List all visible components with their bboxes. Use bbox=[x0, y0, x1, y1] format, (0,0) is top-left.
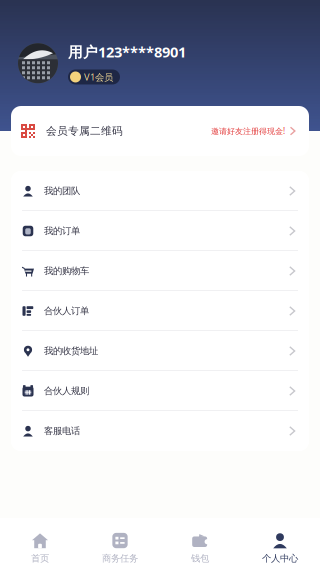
staticText: 我的团队 bbox=[44, 185, 80, 197]
staticText: 邀请好友注册得现金! bbox=[211, 126, 285, 136]
staticText: 用户123****8901 bbox=[68, 42, 186, 61]
staticText: 首页 bbox=[31, 552, 49, 564]
button[interactable]: 客服电话 bbox=[11, 411, 309, 451]
button[interactable]: 我的团队 bbox=[11, 171, 309, 211]
staticText: 客服电话 bbox=[44, 425, 80, 437]
button[interactable]: 我的收货地址 bbox=[11, 331, 309, 371]
button[interactable]: 商务任务 bbox=[80, 518, 160, 570]
staticText: 我的订单 bbox=[44, 225, 80, 237]
staticText: V1会员 bbox=[84, 71, 113, 83]
button[interactable]: 合伙人规则 bbox=[11, 371, 309, 411]
staticText: 我的购物车 bbox=[44, 265, 89, 277]
button[interactable]: 我的订单 bbox=[11, 211, 309, 251]
button[interactable]: 我的购物车 bbox=[11, 251, 309, 291]
staticText: 商务任务 bbox=[102, 552, 138, 564]
staticText: 钱包 bbox=[191, 552, 209, 564]
button[interactable]: 首页 bbox=[0, 518, 80, 570]
staticText: 个人中心 bbox=[262, 552, 298, 564]
button[interactable]: 钱包 bbox=[160, 518, 240, 570]
button[interactable]: 会员专属二维码 bbox=[11, 106, 309, 156]
staticText: 我的收货地址 bbox=[44, 345, 98, 357]
staticText: 合伙人订单 bbox=[44, 305, 89, 317]
staticText: 合伙人规则 bbox=[44, 385, 89, 397]
staticText: 会员专属二维码 bbox=[46, 124, 123, 137]
button[interactable]: 个人中心 bbox=[240, 518, 320, 570]
button[interactable]: 合伙人订单 bbox=[11, 291, 309, 331]
